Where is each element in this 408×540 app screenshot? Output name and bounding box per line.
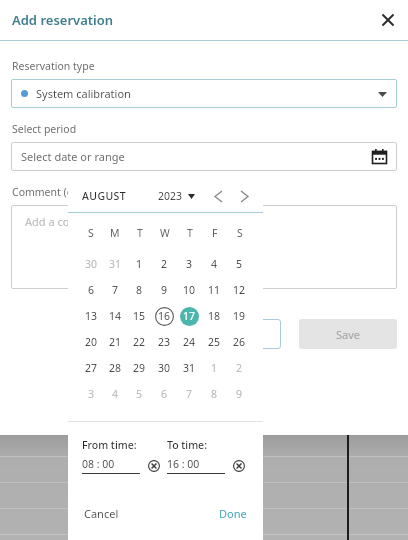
staticText: From time: bbox=[82, 438, 137, 452]
button[interactable]: Done bbox=[217, 504, 249, 523]
button[interactable]: 13 bbox=[79, 303, 103, 329]
staticText: 14 bbox=[109, 309, 122, 323]
button[interactable]: 08 : 00 bbox=[82, 457, 140, 474]
button[interactable]: 23 bbox=[152, 329, 177, 355]
button[interactable]: 15 bbox=[127, 303, 152, 329]
staticText: Done bbox=[219, 506, 247, 521]
staticText: 2 bbox=[161, 257, 168, 271]
button[interactable]: 20 bbox=[79, 329, 103, 355]
button[interactable]: 26 bbox=[227, 329, 252, 355]
staticText: 29 bbox=[133, 361, 146, 375]
staticText: 24 bbox=[183, 335, 196, 349]
staticText: 3 bbox=[88, 387, 95, 401]
button[interactable]: 19 bbox=[227, 303, 252, 329]
button[interactable]: Add a comment bbox=[11, 205, 397, 289]
button[interactable]: 4 bbox=[202, 251, 227, 277]
staticText: 16 : 00 bbox=[167, 457, 200, 471]
button[interactable]: 24 bbox=[177, 329, 202, 355]
button[interactable]: 4 bbox=[103, 381, 127, 407]
button[interactable]: 18 bbox=[202, 303, 227, 329]
button[interactable]: 7 bbox=[103, 277, 127, 303]
staticText: Cancel and bbox=[203, 327, 260, 342]
button[interactable]: 30 bbox=[79, 251, 103, 277]
button[interactable]: 31 bbox=[103, 251, 127, 277]
button[interactable]: 30 bbox=[152, 355, 177, 381]
button[interactable]: 7 bbox=[177, 381, 202, 407]
staticText: Reservation type bbox=[12, 59, 95, 73]
staticText: 7 bbox=[186, 387, 193, 401]
button[interactable]: 2 bbox=[152, 251, 177, 277]
button[interactable]: 3 bbox=[79, 381, 103, 407]
button[interactable]: 2023 bbox=[158, 189, 195, 203]
staticText: T bbox=[137, 226, 143, 240]
staticText: Add reservation bbox=[12, 11, 114, 29]
staticText: 16 bbox=[158, 309, 171, 323]
button[interactable]: Save bbox=[299, 319, 397, 349]
button[interactable]: 25 bbox=[202, 329, 227, 355]
staticText: 31 bbox=[183, 361, 196, 375]
staticText: 18 bbox=[208, 309, 221, 323]
staticText: 22 bbox=[133, 335, 146, 349]
staticText: S bbox=[88, 226, 94, 240]
button[interactable]: 1 bbox=[127, 251, 152, 277]
button[interactable]: 14 bbox=[103, 303, 127, 329]
staticText: 23 bbox=[158, 335, 171, 349]
staticText: 17 bbox=[183, 309, 196, 323]
staticText: 5 bbox=[236, 257, 243, 271]
button[interactable]: Select date or range bbox=[11, 142, 397, 171]
button[interactable]: 2 bbox=[227, 355, 252, 381]
staticText: 9 bbox=[236, 387, 243, 401]
button[interactable]: Cancel and bbox=[181, 319, 281, 349]
button[interactable]: 9 bbox=[227, 381, 252, 407]
button[interactable]: 6 bbox=[79, 277, 103, 303]
button[interactable]: 5 bbox=[227, 251, 252, 277]
button[interactable]: 27 bbox=[79, 355, 103, 381]
button[interactable]: Clear From time: bbox=[146, 458, 162, 474]
button[interactable]: 8 bbox=[202, 381, 227, 407]
button[interactable]: 10 bbox=[177, 277, 202, 303]
button[interactable]: 22 bbox=[127, 329, 152, 355]
button[interactable]: Next month bbox=[235, 187, 253, 205]
button[interactable]: 16 : 00 bbox=[167, 457, 225, 474]
button[interactable]: 12 bbox=[227, 277, 252, 303]
button[interactable]: 29 bbox=[127, 355, 152, 381]
staticText: 25 bbox=[208, 335, 221, 349]
button[interactable]: 8 bbox=[127, 277, 152, 303]
staticText: 08 : 00 bbox=[82, 457, 115, 471]
button[interactable]: Close bbox=[368, 0, 408, 40]
staticText: 4 bbox=[211, 257, 218, 271]
button[interactable]: 21 bbox=[103, 329, 127, 355]
staticText: 30 bbox=[158, 361, 171, 375]
staticText: 6 bbox=[161, 387, 168, 401]
button[interactable]: 28 bbox=[103, 355, 127, 381]
staticText: S bbox=[237, 226, 243, 240]
staticText: Add a comment bbox=[25, 214, 107, 229]
staticText: Save bbox=[336, 327, 361, 342]
staticText: 28 bbox=[109, 361, 122, 375]
staticText: 15 bbox=[133, 309, 146, 323]
staticText: Select date or range bbox=[21, 149, 125, 164]
button[interactable]: Clear To time: bbox=[231, 458, 247, 474]
button[interactable]: Previous month bbox=[209, 187, 227, 205]
staticText: 2 bbox=[236, 361, 243, 375]
button[interactable]: 17 bbox=[177, 303, 202, 329]
button[interactable]: 3 bbox=[177, 251, 202, 277]
staticText: W bbox=[160, 226, 170, 240]
staticText: 27 bbox=[85, 361, 98, 375]
button[interactable]: System calibration bbox=[11, 79, 397, 108]
button[interactable]: 9 bbox=[152, 277, 177, 303]
staticText: Cancel bbox=[84, 506, 119, 521]
button[interactable]: 31 bbox=[177, 355, 202, 381]
staticText: T bbox=[187, 226, 193, 240]
staticText: 26 bbox=[233, 335, 246, 349]
button[interactable]: Cancel bbox=[82, 504, 121, 523]
button[interactable]: 5 bbox=[127, 381, 152, 407]
button[interactable]: 16 bbox=[152, 303, 177, 329]
button[interactable]: 11 bbox=[202, 277, 227, 303]
staticText: 3 bbox=[186, 257, 193, 271]
staticText: System calibration bbox=[36, 86, 131, 101]
staticText: 30 bbox=[85, 257, 98, 271]
button[interactable]: 6 bbox=[152, 381, 177, 407]
staticText: Select period bbox=[12, 122, 77, 136]
button[interactable]: 1 bbox=[202, 355, 227, 381]
